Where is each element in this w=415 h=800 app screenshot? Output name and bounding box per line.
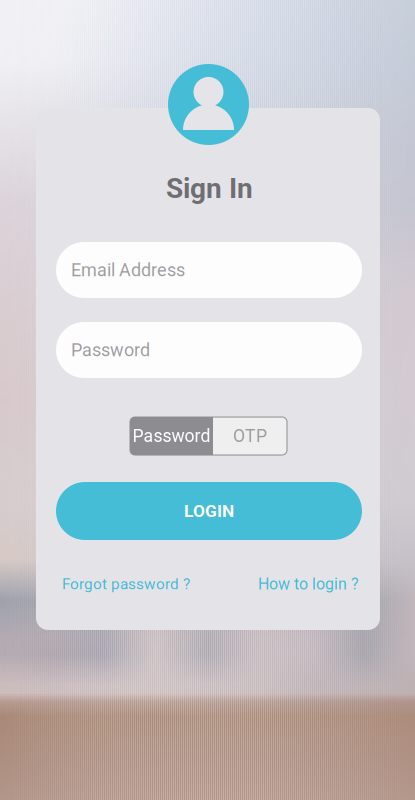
staticText: OTP <box>233 426 267 446</box>
staticText: How to login ? <box>258 575 359 593</box>
staticText: LOGIN <box>184 501 234 521</box>
staticText: Password <box>132 426 210 446</box>
button[interactable]: Forgot password ? <box>62 575 190 593</box>
button[interactable]: LOGIN <box>56 482 362 540</box>
staticText: Sign In <box>166 172 253 205</box>
button[interactable]: OTP <box>213 417 287 455</box>
button[interactable]: Password <box>130 417 213 455</box>
staticText: Forgot password ? <box>62 575 190 593</box>
staticText: Email Address <box>71 259 185 281</box>
button[interactable]: How to login ? <box>258 575 359 593</box>
staticText: Password <box>71 339 150 361</box>
